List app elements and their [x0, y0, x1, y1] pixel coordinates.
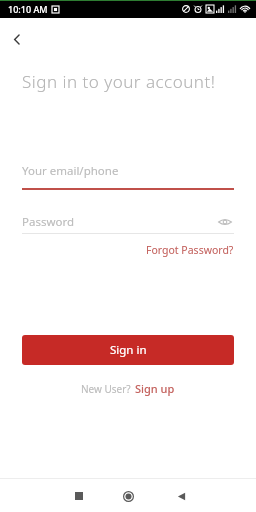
- button[interactable]: Password: [22, 213, 234, 234]
- button[interactable]: Recents: [67, 484, 91, 508]
- staticText: Sign up: [135, 381, 175, 396]
- button[interactable]: Back: [169, 484, 193, 508]
- staticText: Sign in: [110, 342, 147, 358]
- button[interactable]: Show password: [216, 213, 234, 231]
- staticText: New User?: [81, 382, 131, 396]
- button[interactable]: Forgot Password?: [146, 243, 234, 257]
- staticText: Forgot Password?: [146, 243, 234, 257]
- staticText: Password: [22, 214, 216, 230]
- button[interactable]: Back: [2, 24, 32, 54]
- staticText: Your email/phone: [22, 163, 119, 179]
- staticText: 10:10 AM: [8, 3, 48, 15]
- button[interactable]: Home: [116, 484, 140, 508]
- button[interactable]: Sign in: [22, 335, 234, 365]
- button[interactable]: Sign up: [135, 381, 175, 396]
- button[interactable]: Your email/phone: [22, 163, 234, 190]
- staticText: Sign in to your account!: [22, 70, 216, 93]
